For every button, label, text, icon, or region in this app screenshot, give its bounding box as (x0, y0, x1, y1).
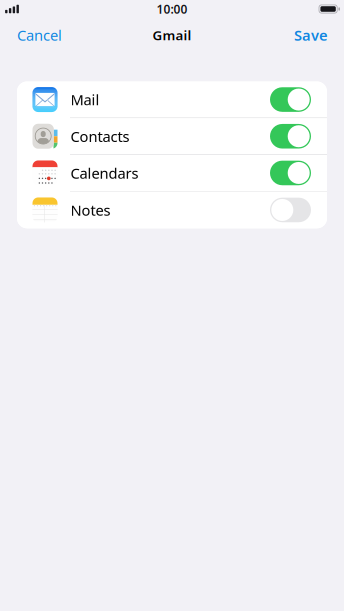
staticText: 10:00 (156, 1, 187, 17)
button[interactable]: Cancel (0, 20, 79, 50)
staticText: Cancel (17, 25, 62, 45)
staticText: Gmail (152, 26, 191, 44)
button[interactable]: Calendars (17, 155, 327, 192)
button[interactable]: Mail (17, 81, 327, 118)
staticText: Mail (70, 90, 99, 109)
staticText: Save (294, 25, 328, 45)
button[interactable]: Save (278, 20, 344, 50)
staticText: Contacts (70, 126, 129, 146)
staticText: Calendars (70, 163, 138, 183)
staticText: Notes (70, 200, 110, 220)
button[interactable]: Contacts (17, 118, 327, 155)
button[interactable]: Notes (17, 192, 327, 228)
